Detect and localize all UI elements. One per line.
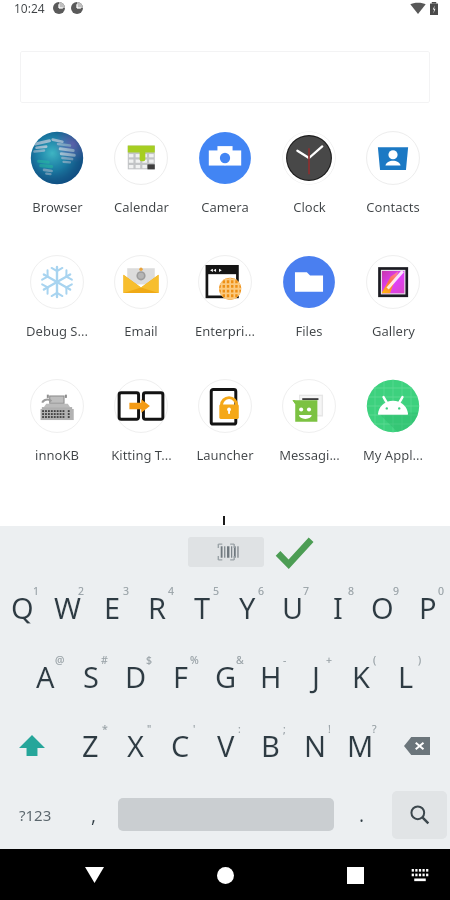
- staticText: Gallery: [372, 322, 415, 340]
- button[interactable]: innoKB: [15, 379, 99, 503]
- button[interactable]: ?123: [0, 780, 70, 849]
- button[interactable]: Debug S...: [15, 255, 99, 379]
- staticText: B: [261, 726, 280, 765]
- button[interactable]: Launcher: [183, 379, 267, 503]
- staticText: 7: [303, 584, 310, 598]
- staticText: Email: [124, 322, 158, 340]
- button[interactable]: Messagi...: [267, 379, 351, 503]
- button[interactable]: Files: [267, 255, 351, 379]
- staticText: 2: [78, 584, 85, 598]
- staticText: C: [171, 726, 190, 765]
- staticText: 3: [123, 584, 130, 598]
- staticText: My Appl...: [363, 446, 423, 464]
- staticText: 10:24: [14, 0, 45, 16]
- button[interactable]: Q: [0, 573, 45, 642]
- button[interactable]: Enterpri...: [183, 255, 267, 379]
- button[interactable]: Email: [99, 255, 183, 379]
- staticText: ": [147, 722, 152, 736]
- staticText: N: [304, 726, 327, 765]
- staticText: L: [398, 657, 414, 696]
- button[interactable]: O: [360, 573, 405, 642]
- button[interactable]: Search: [388, 780, 450, 849]
- staticText: Browser: [32, 198, 83, 216]
- staticText: S: [83, 657, 99, 696]
- button[interactable]: C: [158, 711, 203, 780]
- button[interactable]: Contacts: [351, 131, 435, 255]
- button[interactable]: Calendar: [99, 131, 183, 255]
- button[interactable]: E: [90, 573, 135, 642]
- staticText: &: [236, 653, 244, 667]
- staticText: Enterpri...: [195, 322, 255, 340]
- staticText: G: [215, 657, 237, 696]
- button[interactable]: Space: [117, 780, 335, 849]
- button[interactable]: I: [315, 573, 360, 642]
- staticText: !: [328, 722, 331, 736]
- staticText: Contacts: [366, 198, 420, 216]
- staticText: F: [173, 657, 189, 696]
- staticText: A: [36, 657, 55, 696]
- staticText: K: [352, 657, 370, 696]
- button[interactable]: J: [293, 642, 338, 711]
- staticText: 6: [258, 584, 265, 598]
- button[interactable]: Camera: [183, 131, 267, 255]
- button[interactable]: Z: [68, 711, 113, 780]
- button[interactable]: M: [338, 711, 383, 780]
- button[interactable]: S: [68, 642, 113, 711]
- button[interactable]: W: [45, 573, 90, 642]
- button[interactable]: Backspace: [383, 711, 450, 780]
- button[interactable]: Clock: [267, 131, 351, 255]
- button[interactable]: Home: [205, 855, 245, 895]
- button[interactable]: Switch keyboard: [400, 855, 440, 895]
- staticText: $: [146, 653, 153, 667]
- button[interactable]: My Appl...: [351, 379, 435, 503]
- button[interactable]: Comma: [70, 780, 117, 849]
- button[interactable]: Shift: [0, 711, 63, 780]
- button[interactable]: K: [338, 642, 383, 711]
- button[interactable]: Gallery: [351, 255, 435, 379]
- button[interactable]: B: [248, 711, 293, 780]
- staticText: 4: [168, 584, 175, 598]
- staticText: Debug S...: [26, 322, 88, 340]
- staticText: %: [190, 653, 199, 667]
- button[interactable]: X: [113, 711, 158, 780]
- staticText: Q: [11, 588, 34, 627]
- staticText: Messagi...: [279, 446, 340, 464]
- button[interactable]: T: [180, 573, 225, 642]
- staticText: ;: [283, 722, 286, 736]
- staticText: innoKB: [35, 446, 79, 464]
- button[interactable]: A: [23, 642, 68, 711]
- button[interactable]: Confirm: [275, 533, 313, 571]
- button[interactable]: Recents: [335, 855, 375, 895]
- button[interactable]: U: [270, 573, 315, 642]
- button[interactable]: D: [113, 642, 158, 711]
- staticText: W: [54, 588, 81, 627]
- button[interactable]: Browser: [15, 131, 99, 255]
- staticText: R: [148, 588, 167, 627]
- button[interactable]: Period: [335, 780, 388, 849]
- button[interactable]: L: [383, 642, 428, 711]
- staticText: ,: [91, 802, 97, 828]
- button[interactable]: P: [405, 573, 450, 642]
- button[interactable]: Y: [225, 573, 270, 642]
- staticText: E: [104, 588, 121, 627]
- staticText: I: [333, 588, 343, 627]
- button[interactable]: Scan barcode: [188, 537, 264, 567]
- button[interactable]: Back: [74, 855, 114, 895]
- staticText: .: [359, 802, 365, 828]
- staticText: (: [373, 653, 377, 667]
- button[interactable]: V: [203, 711, 248, 780]
- staticText: Kitting T...: [111, 446, 172, 464]
- button[interactable]: G: [203, 642, 248, 711]
- button[interactable]: N: [293, 711, 338, 780]
- button[interactable]: F: [158, 642, 203, 711]
- staticText: ': [193, 722, 196, 736]
- staticText: @: [55, 653, 65, 667]
- button[interactable]: Kitting T...: [99, 379, 183, 503]
- staticText: Z: [82, 726, 99, 765]
- button[interactable]: R: [135, 573, 180, 642]
- button[interactable]: H: [248, 642, 293, 711]
- staticText: ): [418, 653, 422, 667]
- staticText: ?123: [19, 805, 52, 825]
- staticText: ?: [372, 722, 377, 736]
